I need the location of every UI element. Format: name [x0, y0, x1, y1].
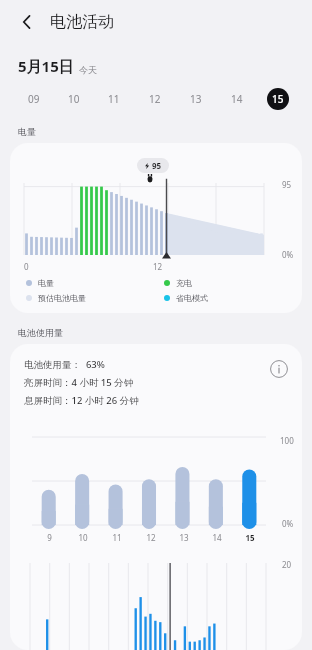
- staticText: 充电: [176, 278, 192, 288]
- staticText: 10: [68, 92, 80, 106]
- staticText: 预估电池电量: [38, 293, 86, 303]
- button[interactable]: 11: [94, 86, 134, 112]
- staticText: 11: [108, 92, 120, 106]
- staticText: 电池活动: [50, 12, 114, 32]
- staticText: 12: [153, 261, 163, 272]
- button[interactable]: 09: [14, 86, 54, 112]
- staticText: 10: [78, 532, 88, 543]
- button[interactable]: 14: [216, 86, 257, 112]
- button[interactable]: 12: [134, 86, 175, 112]
- staticText: 亮屏时间：4 小时 15 分钟: [24, 376, 134, 389]
- staticText: 今天: [79, 64, 97, 75]
- staticText: 省电模式: [176, 293, 208, 303]
- staticText: 电量: [38, 278, 54, 288]
- staticText: 0: [24, 261, 29, 272]
- button[interactable]: 15: [257, 86, 298, 112]
- button[interactable]: 95: [10, 143, 302, 313]
- staticText: 14: [231, 92, 243, 106]
- staticText: 13: [179, 532, 189, 543]
- staticText: 100: [280, 435, 294, 446]
- staticText: 09: [28, 92, 40, 106]
- staticText: 5月15日: [18, 56, 74, 76]
- staticText: 15: [272, 92, 284, 106]
- button[interactable]: Back: [12, 7, 42, 37]
- staticText: 9: [47, 532, 52, 543]
- staticText: 电量: [18, 126, 36, 137]
- staticText: 11: [112, 532, 122, 543]
- staticText: 14: [212, 532, 222, 543]
- staticText: 20: [282, 559, 292, 570]
- staticText: 电池使用量: [18, 327, 63, 338]
- button[interactable]: Info: [268, 358, 290, 380]
- button[interactable]: 13: [175, 86, 216, 112]
- staticText: 15: [245, 532, 255, 543]
- button[interactable]: 10: [54, 86, 94, 112]
- staticText: 12: [149, 92, 161, 106]
- staticText: 13: [190, 92, 202, 106]
- staticText: 12: [146, 532, 156, 543]
- staticText: 0%: [282, 249, 294, 260]
- staticText: 息屏时间：12 小时 26 分钟: [24, 394, 139, 407]
- staticText: 电池使用量： 63%: [24, 358, 105, 371]
- staticText: 95: [282, 179, 292, 190]
- staticText: 95: [152, 160, 162, 171]
- staticText: 0%: [282, 518, 294, 529]
